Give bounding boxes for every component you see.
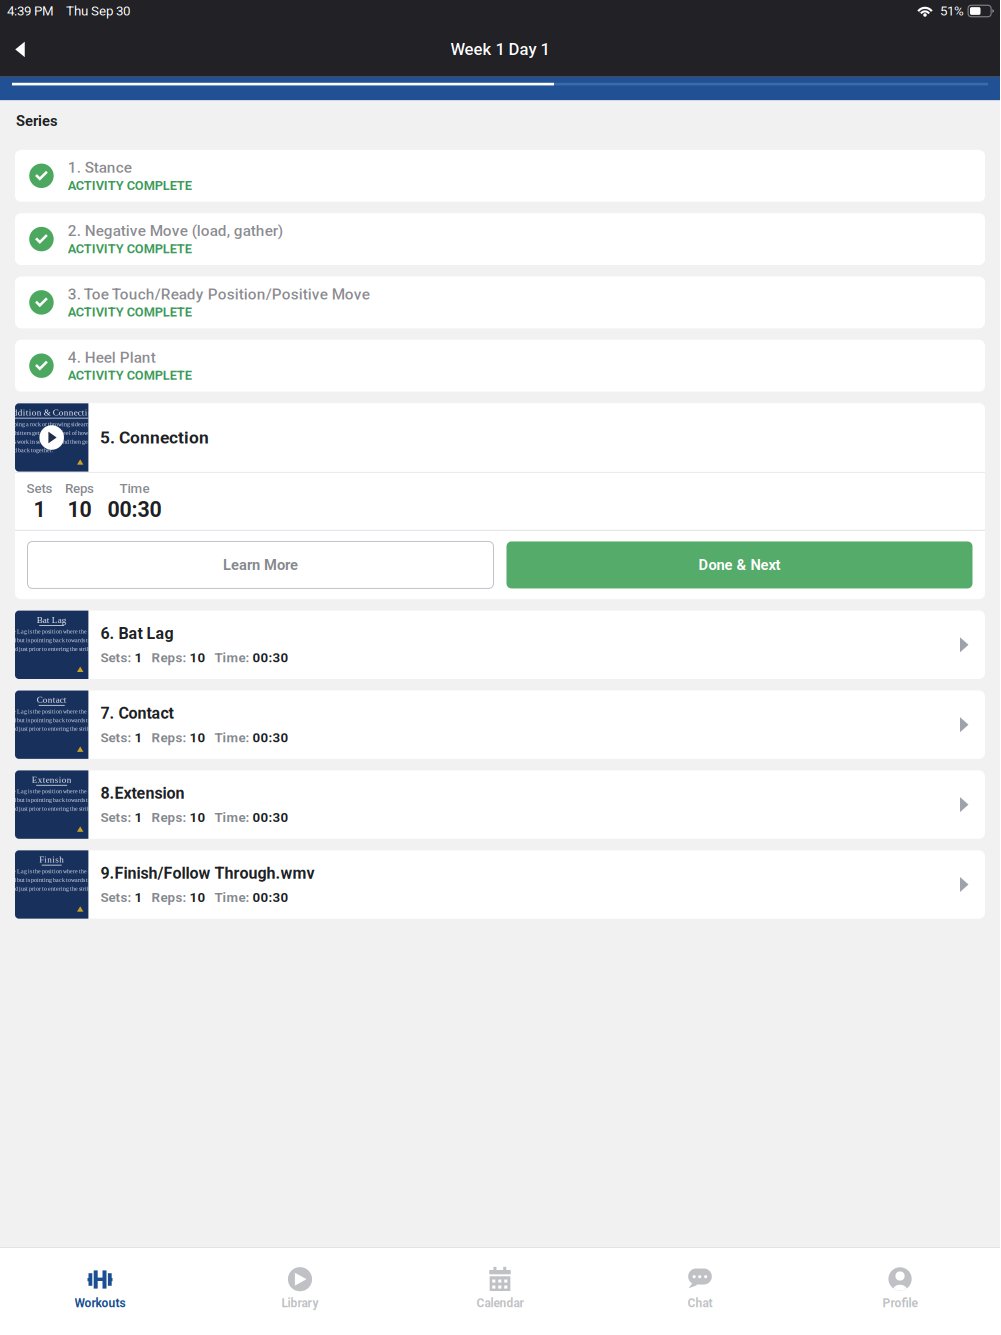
staticText: ACTIVITY COMPLETE bbox=[68, 241, 192, 256]
staticText: 00:30 bbox=[252, 650, 288, 665]
staticText: Sets: bbox=[100, 810, 134, 825]
staticText: ACTIVITY COMPLETE bbox=[68, 368, 192, 383]
staticText: 4. Heel Plant bbox=[68, 348, 156, 366]
staticText: Addition & Connection bbox=[6, 407, 98, 417]
staticText: 1 bbox=[134, 730, 142, 745]
staticText: Sets: bbox=[100, 730, 134, 745]
staticText: ld just prior to entering the strike zon… bbox=[13, 646, 128, 652]
button[interactable]: Back bbox=[3, 28, 37, 70]
staticText: 10 bbox=[189, 890, 205, 905]
staticText: Library bbox=[281, 1296, 318, 1310]
staticText: 9.Finish/Follow Through.wmv bbox=[100, 864, 314, 883]
staticText: Finish bbox=[39, 854, 64, 864]
staticText: Reps: bbox=[142, 810, 189, 825]
staticText: Week 1 Day 1 bbox=[450, 40, 549, 59]
staticText: Done & Next bbox=[698, 556, 780, 574]
staticText: ACTIVITY COMPLETE bbox=[68, 305, 192, 320]
staticText: 00:30 bbox=[252, 810, 288, 825]
staticText: ld just prior to entering the strike zon… bbox=[13, 885, 128, 892]
staticText: es work in sequence and then get bbox=[11, 438, 90, 445]
staticText: e Lag is the position where the head of … bbox=[13, 868, 124, 874]
staticText: d but is pointing back towards the catch… bbox=[13, 797, 128, 803]
staticText: Workouts bbox=[74, 1296, 125, 1310]
button[interactable]: Chat bbox=[600, 1248, 800, 1334]
staticText: ACTIVITY COMPLETE bbox=[68, 178, 192, 193]
button[interactable]: Learn More bbox=[27, 541, 493, 588]
button[interactable]: Extension bbox=[15, 770, 985, 839]
staticText: Reps: bbox=[142, 730, 189, 745]
staticText: Time bbox=[119, 480, 149, 496]
staticText: 8.Extension bbox=[100, 784, 184, 803]
button[interactable]: Contact bbox=[15, 690, 985, 759]
staticText: pping a rock or throwing sidearm can bbox=[11, 421, 101, 427]
staticText: 10 bbox=[189, 810, 205, 825]
staticText: 6. Bat Lag bbox=[100, 624, 173, 643]
staticText: e Lag is the position where the head of … bbox=[13, 628, 124, 635]
staticText: ld just prior to entering the strike zon… bbox=[13, 726, 128, 732]
staticText: 1 bbox=[134, 890, 142, 905]
button[interactable]: Done & Next bbox=[506, 541, 972, 588]
staticText: Reps: bbox=[142, 650, 189, 665]
staticText: 1. Stance bbox=[68, 159, 132, 177]
staticText: 1 bbox=[134, 810, 142, 825]
staticText: d but is pointing back towards the catch… bbox=[13, 717, 128, 723]
button[interactable]: Calendar bbox=[400, 1248, 600, 1334]
staticText: p hitters get a better feel of how all t… bbox=[11, 430, 105, 436]
staticText: 1 bbox=[34, 497, 46, 522]
button[interactable]: 1. Stance bbox=[15, 150, 985, 202]
staticText: Sets: bbox=[100, 890, 134, 905]
staticText: Bat Lag bbox=[37, 615, 67, 625]
button[interactable]: Finish bbox=[15, 850, 985, 919]
staticText: 1 bbox=[134, 650, 142, 665]
staticText: Sets bbox=[27, 480, 53, 496]
staticText: Time: bbox=[205, 730, 252, 745]
staticText: Profile bbox=[882, 1296, 917, 1310]
button[interactable]: 3. Toe Touch/Ready Position/Positive Mov… bbox=[15, 276, 985, 328]
staticText: 3. Toe Touch/Ready Position/Positive Mov… bbox=[68, 285, 370, 303]
button[interactable]: Workouts bbox=[0, 1248, 200, 1334]
staticText: ld just prior to entering the strike zon… bbox=[13, 805, 128, 812]
button[interactable]: Library bbox=[200, 1248, 400, 1334]
staticText: 00:30 bbox=[252, 890, 288, 905]
staticText: Time: bbox=[205, 650, 252, 665]
staticText: 00:30 bbox=[107, 497, 161, 522]
staticText: e Lag is the position where the head of … bbox=[13, 708, 124, 715]
staticText: d but is pointing back towards the catch… bbox=[13, 637, 128, 643]
staticText: Calendar bbox=[476, 1296, 523, 1310]
button[interactable]: Bat Lag bbox=[15, 611, 985, 679]
staticText: Learn More bbox=[223, 556, 298, 574]
button[interactable]: 2. Negative Move (load, gather) bbox=[15, 213, 985, 265]
staticText: d but is pointing back towards the catch… bbox=[13, 877, 128, 883]
staticText: e Lag is the position where the head of … bbox=[13, 788, 124, 795]
staticText: 7. Contact bbox=[100, 704, 173, 723]
staticText: 4:39 PM bbox=[7, 3, 54, 19]
staticText: 10 bbox=[189, 650, 205, 665]
staticText: Thu Sep 30 bbox=[66, 3, 130, 19]
staticText: Series bbox=[16, 112, 58, 130]
button[interactable]: 4. Heel Plant bbox=[15, 340, 985, 392]
staticText: 00:30 bbox=[252, 730, 288, 745]
staticText: Sets: bbox=[100, 650, 134, 665]
staticText: 10 bbox=[189, 730, 205, 745]
staticText: Reps bbox=[65, 480, 94, 496]
staticText: Time: bbox=[205, 890, 252, 905]
staticText: Contact bbox=[37, 695, 67, 705]
staticText: 5. Connection bbox=[100, 427, 209, 448]
staticText: Time: bbox=[205, 810, 252, 825]
staticText: ed back together. bbox=[11, 447, 53, 454]
staticText: 10 bbox=[68, 497, 92, 522]
staticText: Reps: bbox=[142, 890, 189, 905]
button[interactable]: Profile bbox=[800, 1248, 1000, 1334]
staticText: 51% bbox=[940, 3, 964, 19]
staticText: Chat bbox=[687, 1296, 712, 1310]
staticText: Extension bbox=[32, 775, 72, 785]
staticText: 2. Negative Move (load, gather) bbox=[68, 222, 283, 240]
